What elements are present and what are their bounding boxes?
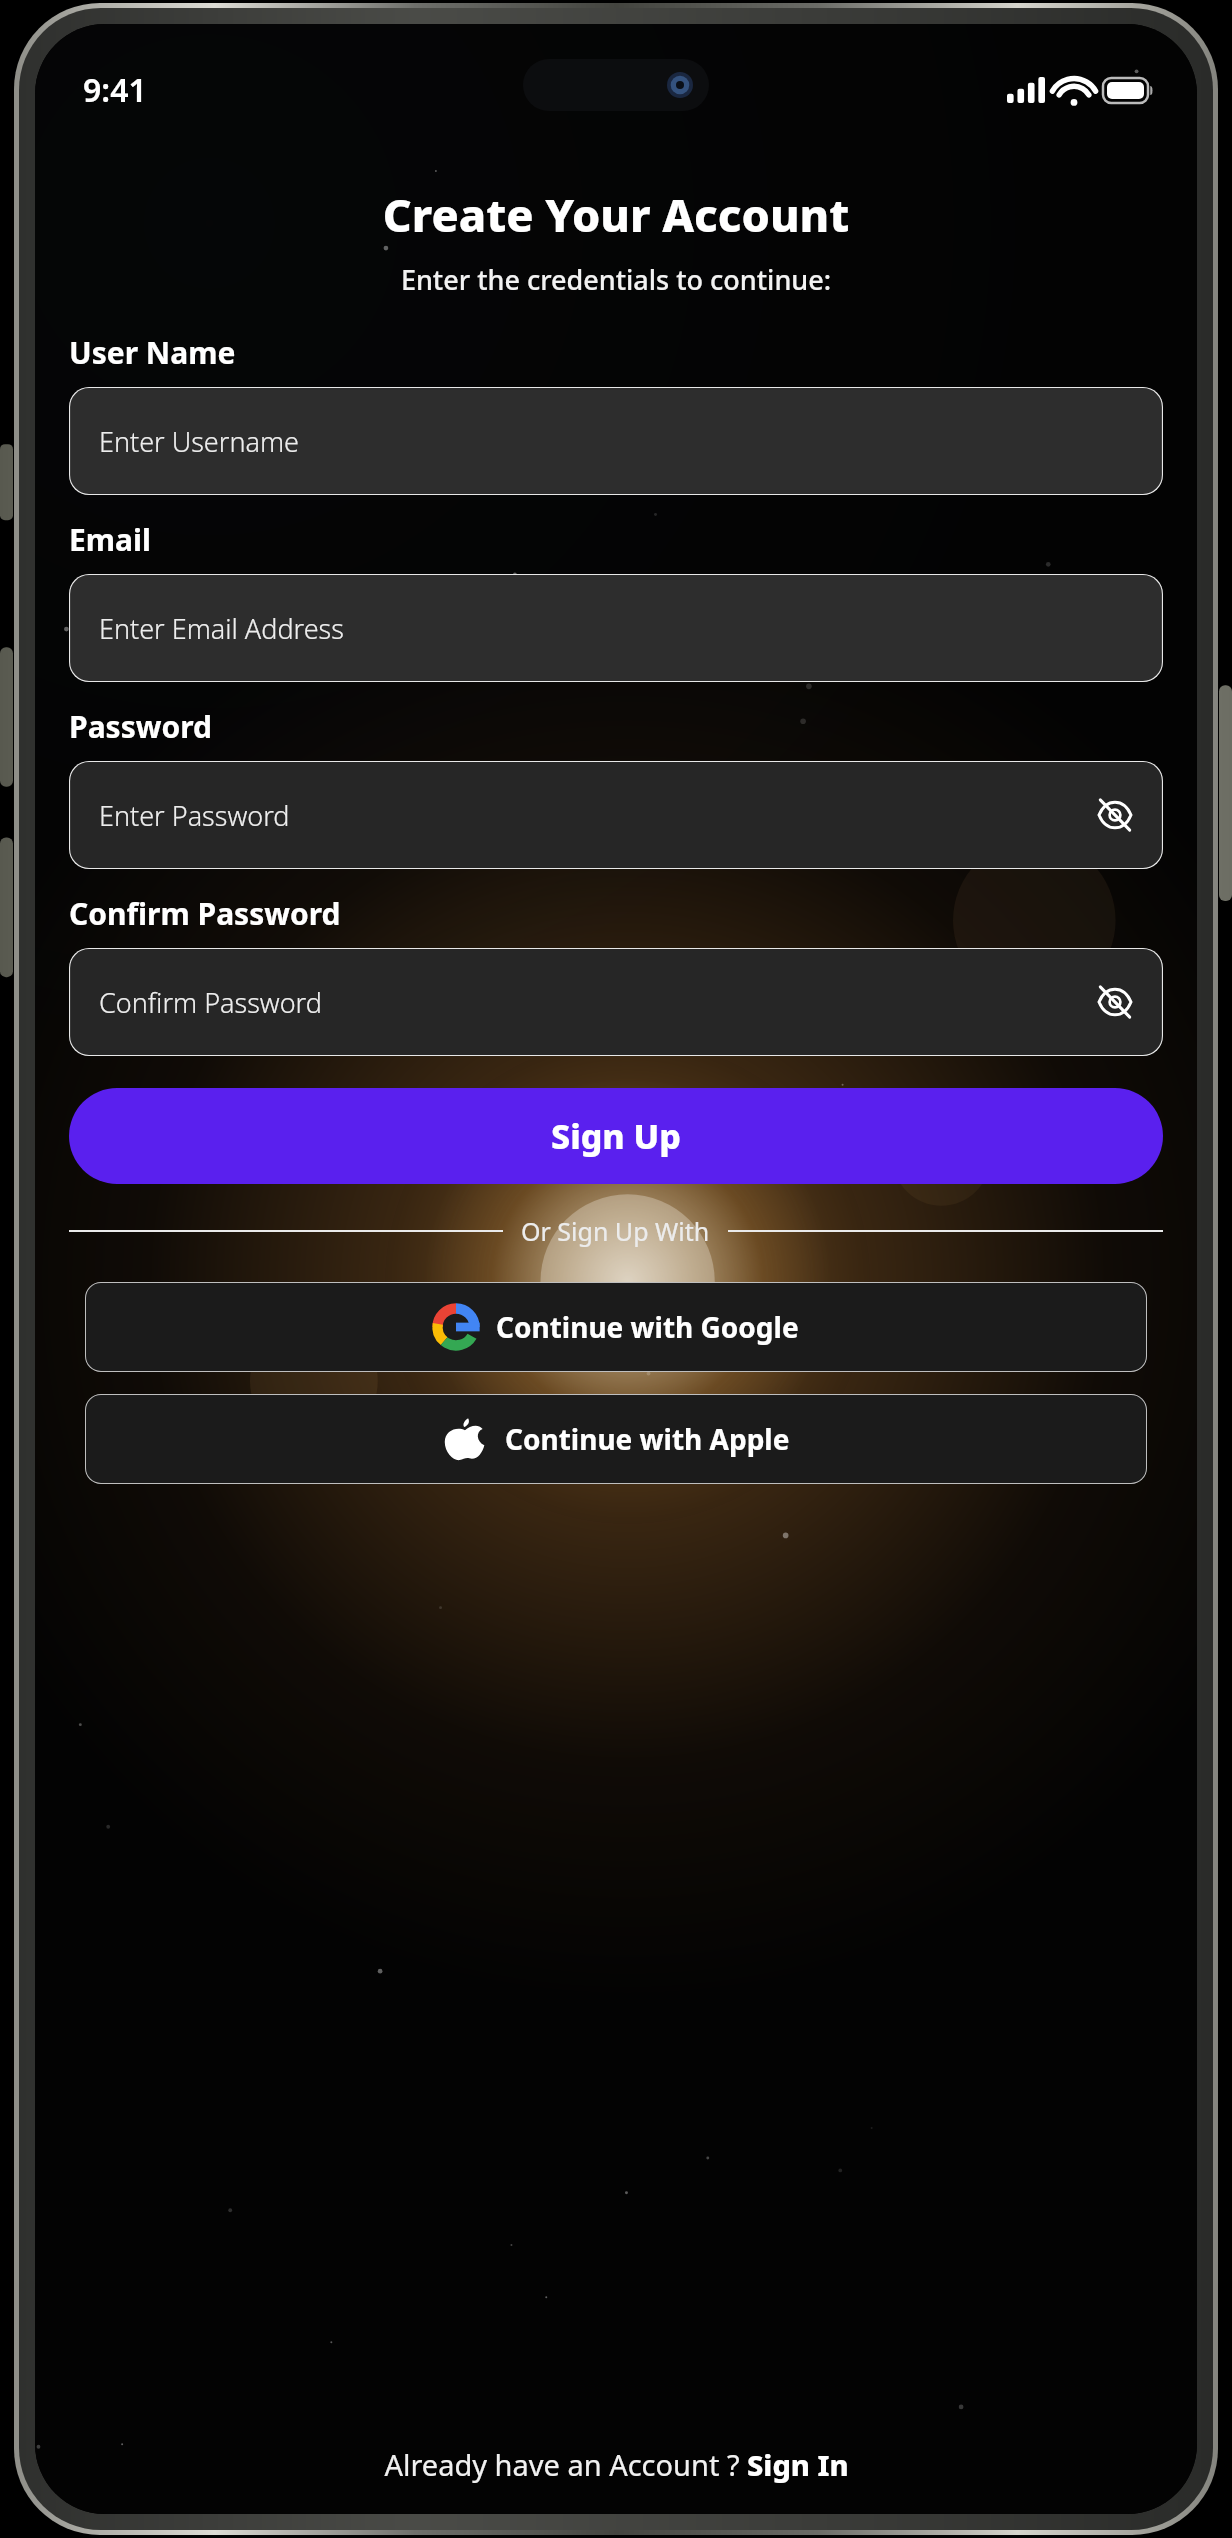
staticText: Continue with Google [496,1308,799,1346]
staticText: Enter the credentials to continue: [35,261,1197,298]
staticText: Enter Email Address [99,610,344,647]
staticText: Already have an Account ? Sign In [384,2445,849,2484]
button[interactable]: Show password [1093,793,1137,837]
staticText: 9:41 [83,68,147,112]
staticText: Continue with Apple [505,1420,790,1458]
button[interactable]: Already have an Account ? Sign In [35,2445,1197,2514]
staticText: Enter Username [99,423,299,460]
staticText: Or Sign Up With [521,1214,710,1248]
button[interactable]: Continue with Apple [85,1394,1147,1484]
staticText: Email [69,519,151,560]
button[interactable]: Sign Up [69,1088,1163,1184]
staticText: Enter Password [99,797,290,834]
staticText: Confirm Password [99,984,322,1021]
button[interactable]: Enter Email Address [69,574,1163,682]
staticText: Confirm Password [69,893,341,934]
button[interactable]: Continue with Google [85,1282,1147,1372]
button[interactable]: Show confirm password [1093,980,1137,1024]
staticText: User Name [69,332,236,373]
staticText: Password [69,706,212,747]
button[interactable]: Enter Username [69,387,1163,495]
staticText: Sign Up [551,1113,681,1159]
button[interactable]: Confirm Password [69,948,1163,1056]
button[interactable]: Enter Password [69,761,1163,869]
staticText: Create Your Account [35,184,1197,245]
